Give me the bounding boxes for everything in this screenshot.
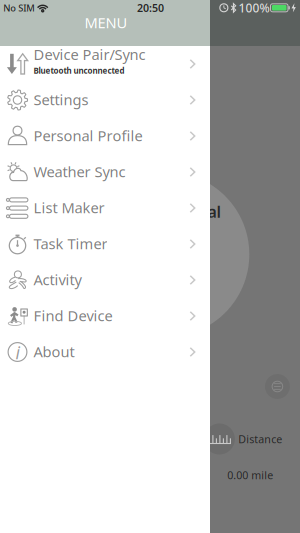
staticText: i	[15, 341, 19, 364]
button[interactable]: Device Pair/Sync	[0, 46, 210, 82]
staticText: No SIM	[3, 2, 35, 14]
staticText: List Maker	[33, 198, 104, 217]
button[interactable]: Distance	[204, 423, 235, 454]
button[interactable]: Task Timer	[0, 226, 210, 262]
staticText: Task Timer	[33, 234, 107, 253]
staticText: Distance	[238, 432, 282, 446]
staticText: Bluetooth unconnected	[33, 65, 124, 76]
button[interactable]: Activity	[0, 262, 210, 298]
staticText: MENU	[84, 13, 127, 32]
button[interactable]: Weather Sync	[0, 154, 210, 190]
staticText: 0.00 mile	[227, 468, 273, 482]
button[interactable]: i	[0, 334, 210, 370]
staticText: Settings	[33, 90, 88, 109]
button[interactable]: MENU	[84, 13, 127, 32]
staticText: al	[207, 201, 221, 222]
staticText: Activity	[33, 270, 81, 289]
staticText: Personal Profile	[33, 126, 142, 145]
staticText: Weather Sync	[33, 162, 125, 181]
button[interactable]: Personal Profile	[0, 118, 210, 154]
staticText: 20:50	[137, 1, 164, 15]
staticText: Device Pair/Sync	[33, 45, 145, 64]
staticText: Find Device	[33, 306, 112, 325]
staticText: 100%	[238, 0, 269, 16]
button[interactable]: Settings	[0, 82, 210, 118]
button[interactable]: List Maker	[0, 190, 210, 226]
staticText: About	[33, 342, 74, 361]
button[interactable]: Find Device	[0, 298, 210, 334]
button[interactable]: Menu	[265, 374, 290, 399]
